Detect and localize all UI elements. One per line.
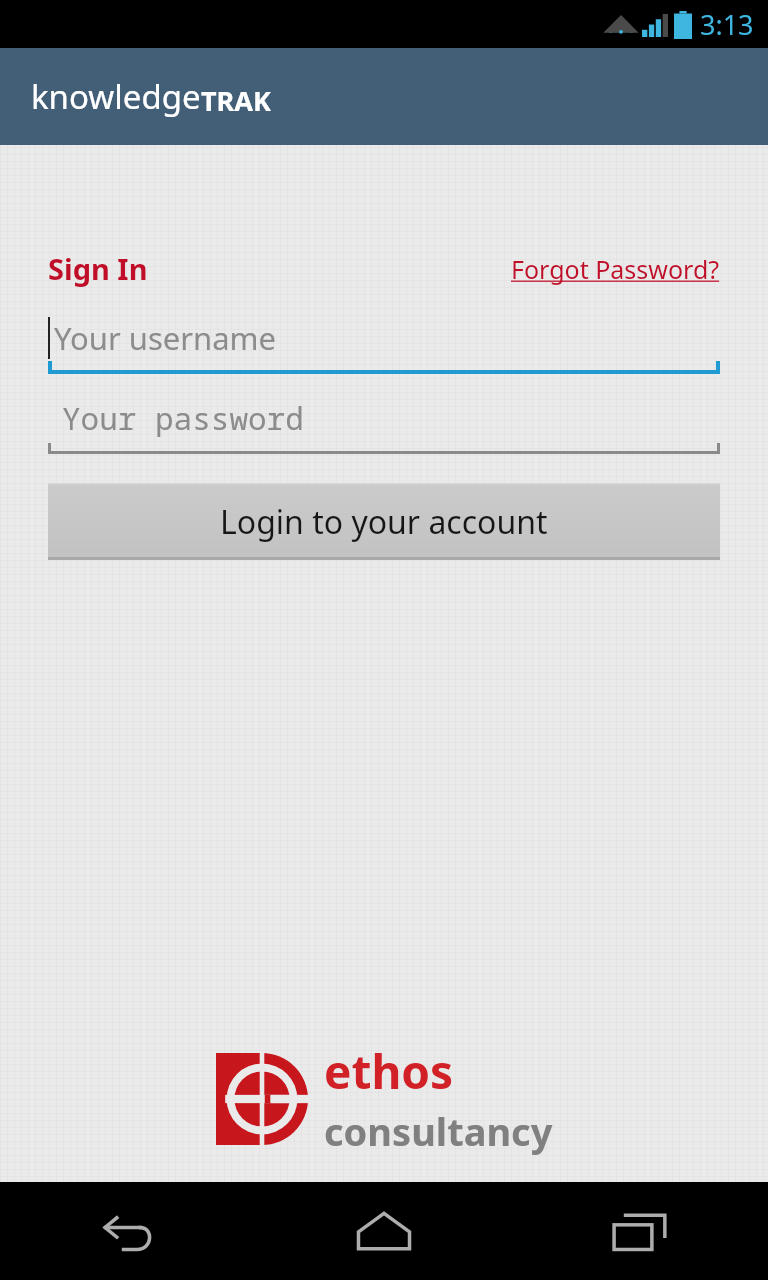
- staticText: 3:13: [700, 6, 754, 43]
- staticText: ethos: [324, 1040, 454, 1103]
- button[interactable]: Forgot Password?: [511, 252, 720, 286]
- staticText: TRAK: [201, 82, 271, 119]
- button[interactable]: Your password: [48, 388, 720, 454]
- staticText: Login to your account: [220, 500, 548, 544]
- button[interactable]: Login to your account: [48, 483, 720, 560]
- button[interactable]: Back: [0, 1182, 256, 1280]
- staticText: Forgot Password?: [511, 252, 720, 286]
- staticText: Your username: [54, 317, 277, 359]
- button[interactable]: Your username: [48, 308, 720, 374]
- staticText: Sign In: [48, 249, 148, 288]
- staticText: consultancy: [324, 1105, 553, 1157]
- staticText: Your password: [62, 397, 304, 439]
- button[interactable]: Home: [256, 1182, 512, 1280]
- staticText: knowledge: [31, 74, 201, 119]
- button[interactable]: Recent apps: [512, 1182, 768, 1280]
